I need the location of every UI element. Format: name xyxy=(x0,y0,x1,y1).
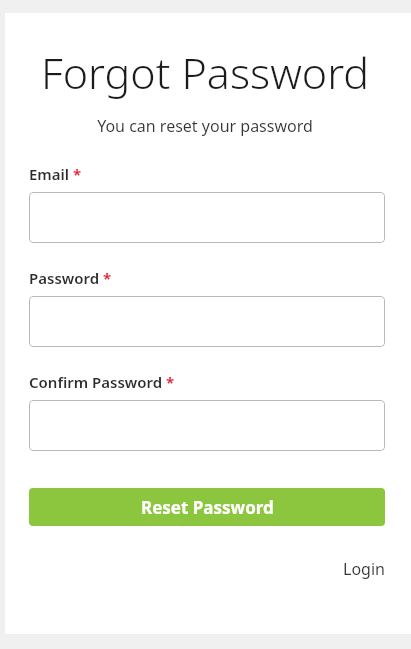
staticText: Password * xyxy=(29,268,112,288)
button[interactable]: Password xyxy=(29,296,385,347)
staticText: Forgot Password xyxy=(0,43,410,102)
staticText: You can reset your password xyxy=(0,115,410,137)
staticText: Confirm Password * xyxy=(29,372,175,392)
staticText: Email * xyxy=(29,164,82,184)
button[interactable]: Confirm Password xyxy=(29,400,385,451)
staticText: Login xyxy=(343,558,385,580)
button[interactable]: Email xyxy=(29,192,385,243)
button[interactable]: Reset Password xyxy=(29,488,385,526)
button[interactable]: Login xyxy=(343,558,385,580)
staticText: Reset Password xyxy=(141,496,274,519)
